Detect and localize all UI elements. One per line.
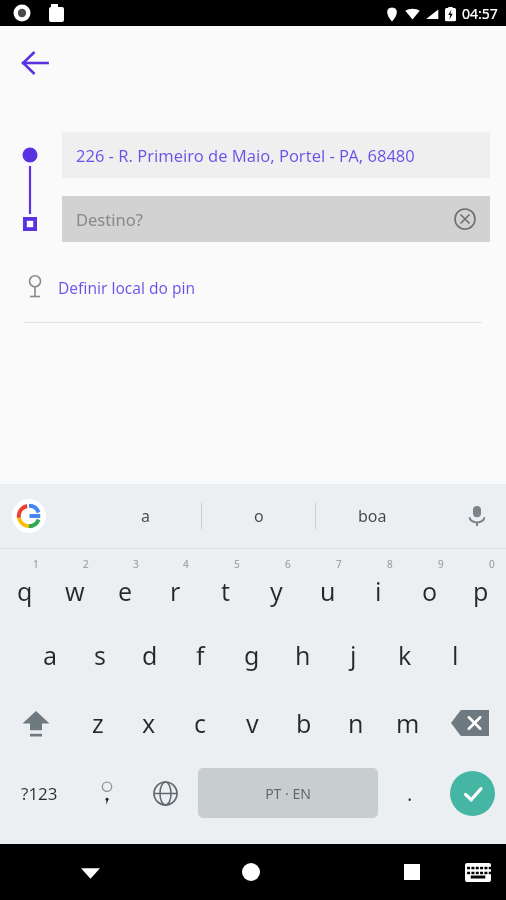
staticText: 04:57 [462, 4, 498, 23]
button[interactable]: f [175, 621, 226, 689]
button[interactable]: m [382, 689, 434, 757]
button[interactable]: Definir local do pin [18, 264, 298, 310]
button[interactable]: Voice input [456, 495, 498, 537]
button[interactable]: n [330, 689, 382, 757]
button[interactable]: a [89, 491, 201, 541]
staticText: a [43, 638, 58, 672]
staticText: e [118, 574, 133, 608]
staticText: j [350, 638, 357, 672]
staticText: q [17, 574, 33, 608]
staticText: Definir local do pin [58, 277, 195, 298]
button[interactable]: 226 - R. Primeiro de Maio, Portel - PA, … [62, 132, 490, 178]
button[interactable]: z [72, 689, 123, 757]
button[interactable]: 2 [50, 553, 100, 621]
button[interactable]: 3 [100, 553, 150, 621]
button[interactable]: Switch keyboard [450, 844, 506, 900]
button[interactable]: boa [316, 491, 429, 541]
staticText: 2 [83, 557, 89, 571]
staticText: z [92, 706, 104, 740]
button[interactable]: Back [12, 40, 58, 86]
staticText: 1 [33, 557, 39, 571]
button[interactable]: Clear destination [448, 202, 482, 236]
staticText: 7 [336, 557, 342, 571]
button[interactable]: k [379, 621, 430, 689]
staticText: ?123 [21, 782, 58, 805]
button[interactable]: j [328, 621, 379, 689]
button[interactable]: ?123 [0, 757, 78, 829]
button[interactable]: Back [62, 844, 118, 900]
staticText: Destino? [76, 208, 143, 230]
button[interactable]: 4 [150, 553, 200, 621]
staticText: 8 [387, 557, 393, 571]
button[interactable]: Destino? [62, 196, 490, 242]
button[interactable]: 9 [404, 553, 455, 621]
button[interactable]: Comma and emoji [78, 757, 136, 829]
button[interactable]: 1 [0, 553, 50, 621]
staticText: s [94, 638, 106, 672]
staticText: w [65, 574, 85, 608]
staticText: b [296, 706, 312, 740]
staticText: 4 [183, 557, 189, 571]
staticText: g [244, 638, 260, 672]
staticText: 5 [234, 557, 240, 571]
staticText: u [320, 574, 336, 608]
button[interactable]: x [123, 689, 174, 757]
button[interactable]: 0 [455, 553, 506, 621]
staticText: 6 [285, 557, 291, 571]
staticText: h [295, 638, 311, 672]
button[interactable]: 7 [302, 553, 353, 621]
staticText: p [473, 574, 489, 608]
button[interactable]: a [25, 621, 75, 689]
staticText: l [452, 638, 459, 672]
staticText: 9 [438, 557, 444, 571]
button[interactable]: Backspace [434, 689, 506, 757]
staticText: a [141, 505, 150, 527]
button[interactable]: h [277, 621, 328, 689]
staticText: i [375, 574, 382, 608]
staticText: PT · EN [265, 784, 311, 803]
staticText: k [398, 638, 412, 672]
staticText: y [270, 574, 283, 608]
staticText: n [348, 706, 364, 740]
staticText: t [221, 574, 231, 608]
staticText: v [246, 706, 259, 740]
button[interactable]: d [125, 621, 175, 689]
staticText: 226 - R. Primeiro de Maio, Portel - PA, … [76, 144, 415, 166]
button[interactable]: 6 [251, 553, 302, 621]
button[interactable]: Google [8, 495, 50, 537]
button[interactable]: Recent apps [384, 844, 440, 900]
button[interactable]: 8 [353, 553, 404, 621]
staticText: boa [358, 505, 387, 527]
button[interactable]: 5 [200, 553, 251, 621]
staticText: f [196, 638, 205, 672]
staticText: o [254, 505, 264, 527]
button[interactable]: Change language [136, 757, 194, 829]
button[interactable]: PT · EN [198, 768, 378, 818]
staticText: 0 [489, 557, 495, 571]
button[interactable]: c [174, 689, 226, 757]
staticText: 3 [133, 557, 139, 571]
button[interactable]: o [202, 491, 315, 541]
staticText: d [142, 638, 158, 672]
staticText: c [194, 706, 207, 740]
staticText: o [422, 574, 438, 608]
staticText: r [170, 574, 181, 608]
button[interactable]: Shift [0, 689, 72, 757]
button[interactable]: b [278, 689, 330, 757]
button[interactable]: Home [223, 844, 279, 900]
button[interactable]: l [430, 621, 481, 689]
button[interactable]: Enter [438, 757, 506, 829]
staticText: m [396, 706, 420, 740]
button[interactable]: . [382, 757, 438, 829]
staticText: x [142, 706, 156, 740]
button[interactable]: g [226, 621, 277, 689]
staticText: . [407, 780, 413, 807]
button[interactable]: s [75, 621, 125, 689]
button[interactable]: v [226, 689, 278, 757]
